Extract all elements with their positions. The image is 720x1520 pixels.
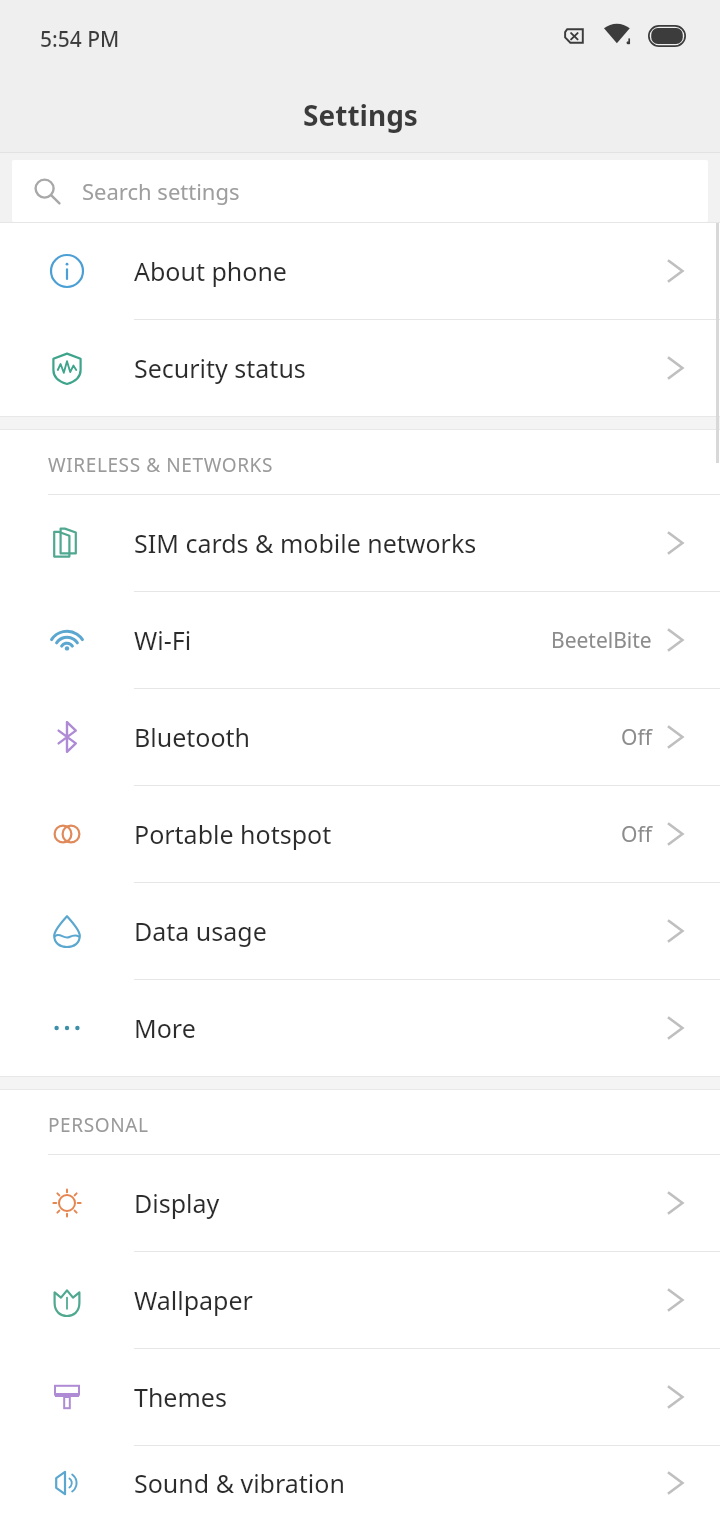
button[interactable]: Search settings [12, 160, 708, 222]
button[interactable]: SIM cards & mobile networks [0, 495, 720, 591]
button[interactable]: Wallpaper [0, 1252, 720, 1348]
button[interactable]: Display [0, 1155, 720, 1251]
button[interactable]: Bluetooth [0, 689, 720, 785]
staticText: Settings [303, 96, 418, 134]
button[interactable]: Sound & vibration [0, 1446, 720, 1520]
staticText: WIRELESS & NETWORKS [48, 452, 273, 478]
staticText: More [134, 1011, 196, 1045]
staticText: Off [621, 723, 652, 752]
staticText: Sound & vibration [134, 1466, 345, 1500]
button[interactable]: Security status [0, 320, 720, 416]
staticText: Portable hotspot [134, 817, 332, 851]
staticText: About phone [134, 254, 287, 288]
staticText: PERSONAL [48, 1112, 149, 1138]
staticText: 5:54 PM [40, 25, 120, 54]
staticText: Themes [134, 1380, 227, 1414]
button[interactable]: About phone [0, 223, 720, 319]
button[interactable]: Data usage [0, 883, 720, 979]
staticText: Display [134, 1186, 220, 1220]
button[interactable]: Themes [0, 1349, 720, 1445]
staticText: Search settings [82, 176, 240, 206]
staticText: Wi-Fi [134, 623, 192, 657]
button[interactable]: Portable hotspot [0, 786, 720, 882]
staticText: Bluetooth [134, 720, 251, 754]
staticText: BeetelBite [551, 626, 652, 655]
staticText: Wallpaper [134, 1283, 253, 1317]
staticText: Off [621, 820, 652, 849]
staticText: Security status [134, 351, 306, 385]
staticText: SIM cards & mobile networks [134, 526, 477, 560]
button[interactable]: More [0, 980, 720, 1076]
button[interactable]: Wi-Fi [0, 592, 720, 688]
staticText: Data usage [134, 914, 267, 948]
